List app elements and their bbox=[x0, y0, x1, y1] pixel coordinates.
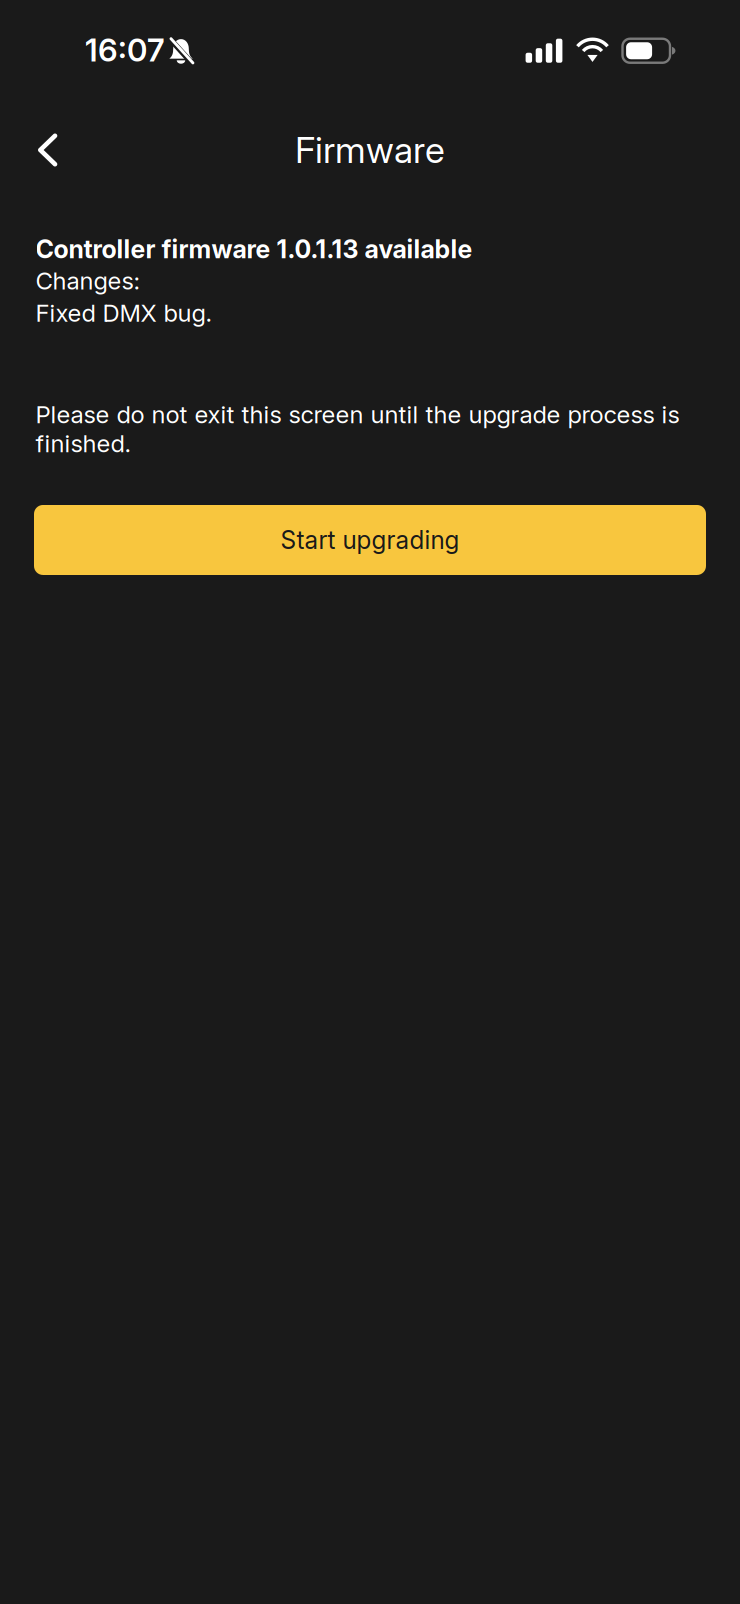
staticText: Firmware bbox=[295, 128, 445, 172]
staticText: Changes: bbox=[35, 266, 140, 295]
button[interactable]: Start upgrading bbox=[34, 505, 706, 575]
staticText: Start upgrading bbox=[280, 525, 459, 555]
staticText: Please do not exit this screen until the… bbox=[35, 400, 679, 458]
staticText: 16:07 bbox=[85, 31, 165, 69]
button[interactable]: Back bbox=[0, 122, 83, 177]
staticText: Fixed DMX bug. bbox=[35, 299, 212, 328]
staticText: Controller firmware 1.0.1.13 available bbox=[35, 234, 472, 264]
